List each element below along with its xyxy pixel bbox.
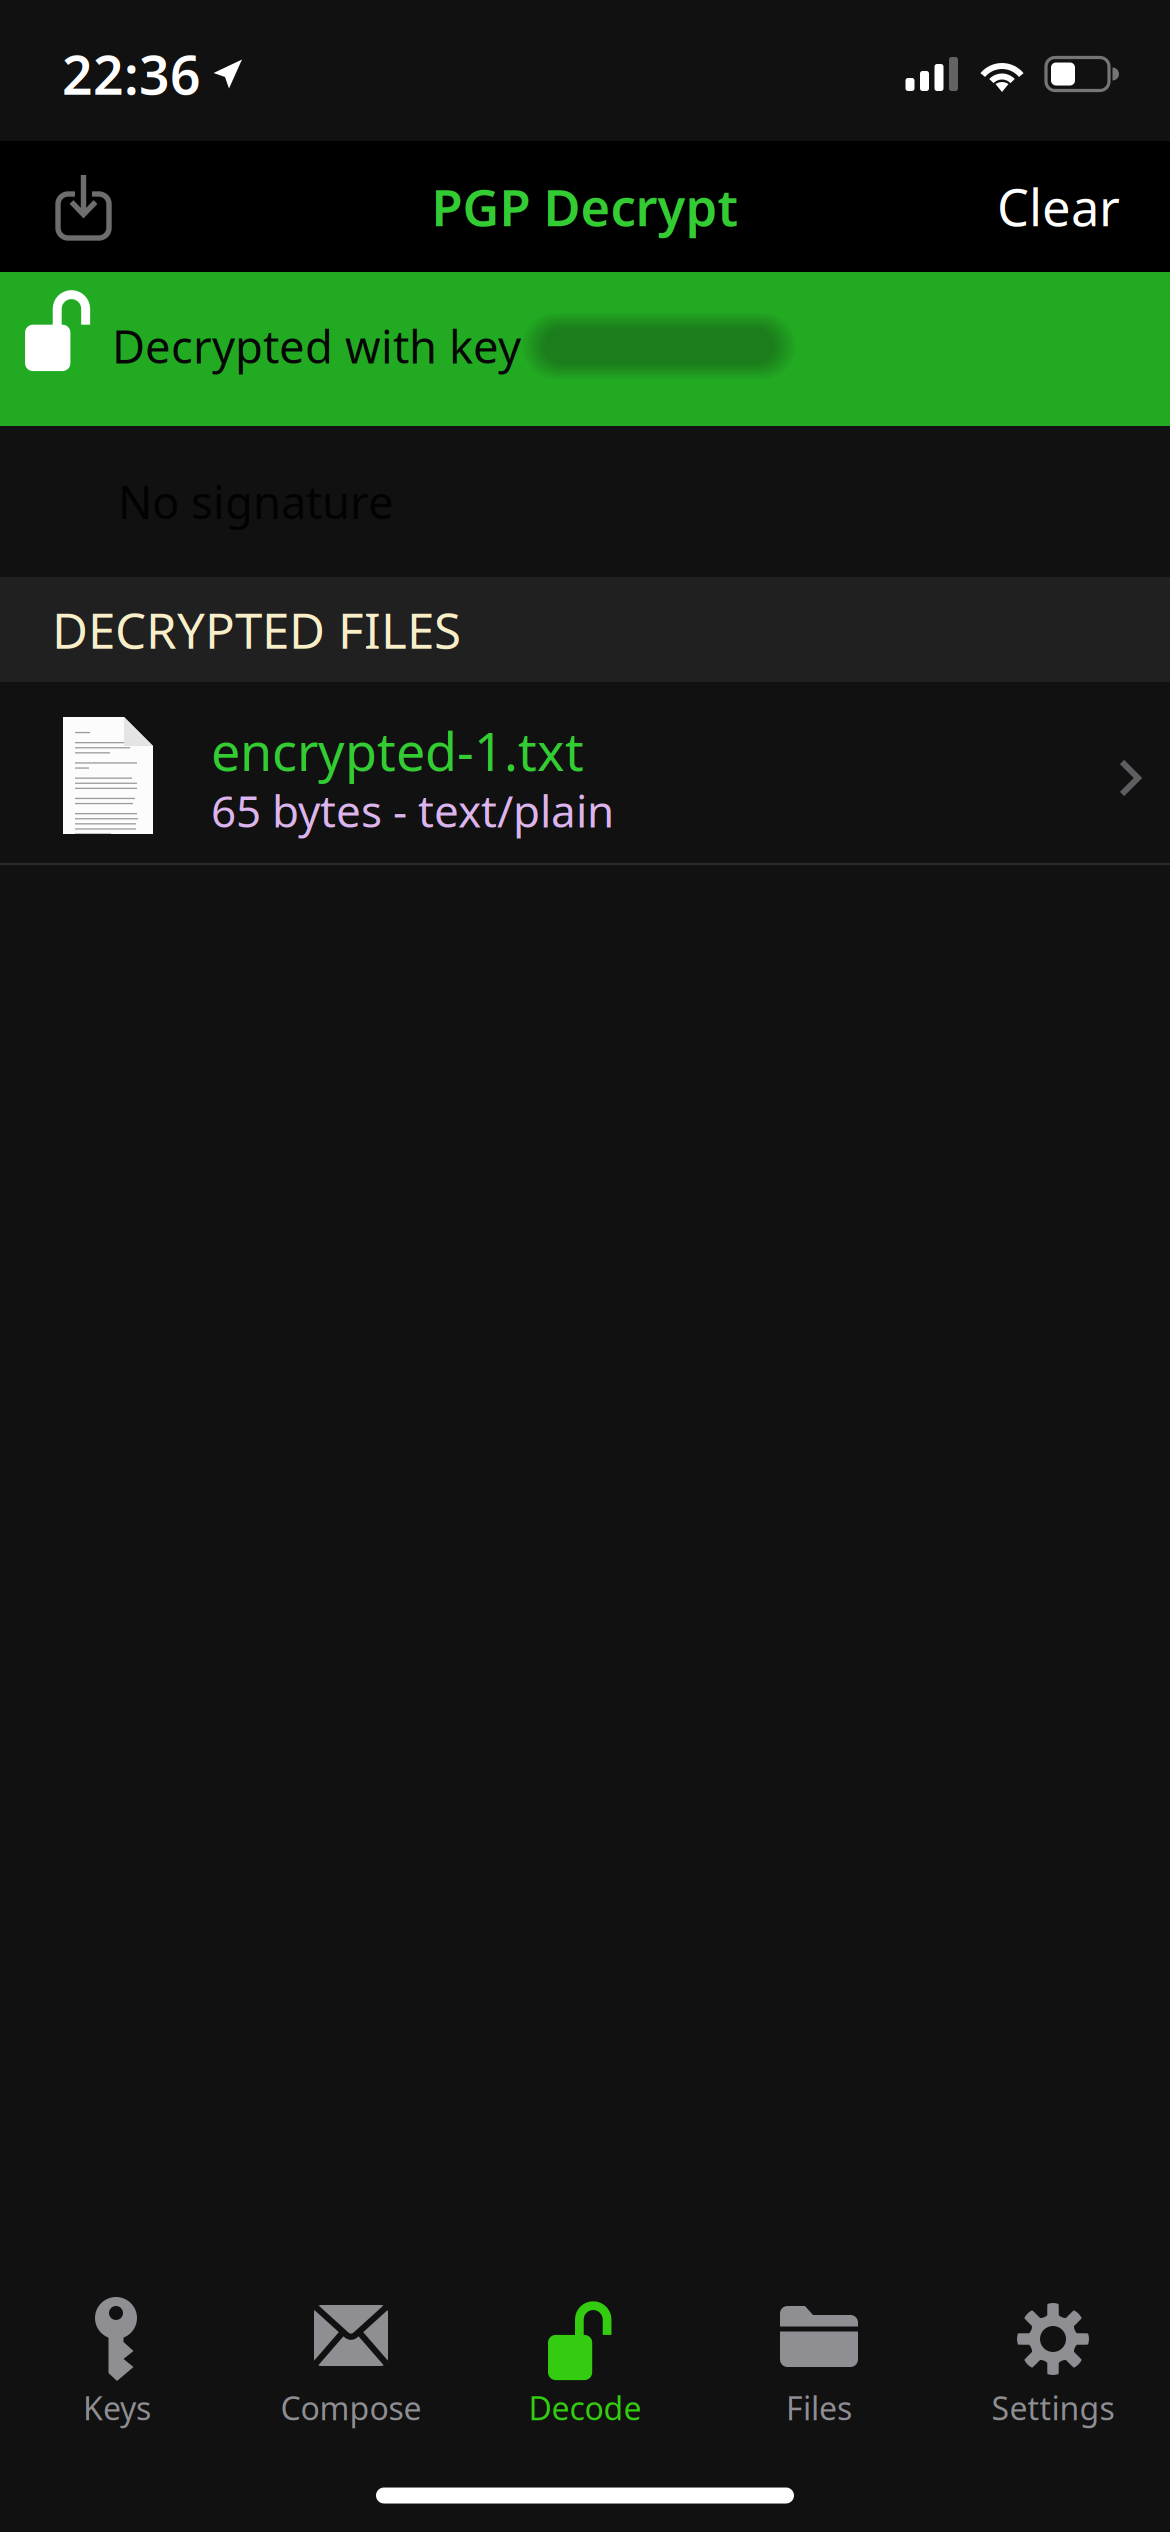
staticText: 22:36 [62,39,201,109]
staticText: No signature [118,471,394,532]
button[interactable]: Decode [468,2284,702,2459]
button[interactable]: Compose [234,2284,468,2459]
staticText: 65 bytes - text/plain [211,781,614,840]
button[interactable]: Settings [936,2284,1170,2459]
staticText: Settings [991,2386,1114,2429]
button[interactable]: Import file [22,141,140,272]
staticText: Decode [528,2386,641,2429]
button[interactable]: encrypted-1.txt [0,682,1170,865]
staticText: DECRYPTED FILES [52,597,461,662]
button[interactable]: Clear [975,141,1142,272]
button[interactable]: Keys [0,2284,234,2459]
button[interactable]: Files [702,2284,936,2459]
staticText: Keys [83,2386,151,2429]
staticText: Files [786,2386,852,2429]
staticText: Decrypted with key [112,316,521,376]
staticText: Clear [997,173,1120,240]
staticText: encrypted-1.txt [211,716,584,785]
staticText: PGP Decrypt [431,173,738,240]
staticText: Compose [280,2386,421,2429]
